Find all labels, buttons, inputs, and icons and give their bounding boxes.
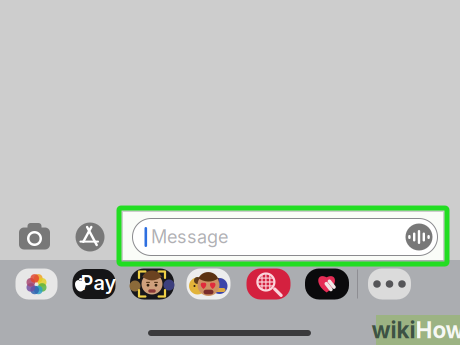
button[interactable]: Take photo <box>18 223 51 251</box>
button[interactable]: Images <box>246 268 290 299</box>
button[interactable]: Memoji Stickers <box>186 268 230 299</box>
staticText: wiki <box>371 316 415 344</box>
button[interactable]: Photos <box>15 268 57 299</box>
button[interactable]: Digital Touch <box>305 268 349 299</box>
staticText: Pay <box>80 270 116 295</box>
button[interactable]: iMessage apps <box>75 222 104 251</box>
button[interactable]: More apps <box>368 268 411 299</box>
staticText: How <box>415 316 460 344</box>
button[interactable]: Apple Pay <box>72 269 115 299</box>
button[interactable]: Memoji <box>130 268 174 299</box>
staticText: Message <box>151 226 228 247</box>
button[interactable]: Message <box>132 218 437 255</box>
